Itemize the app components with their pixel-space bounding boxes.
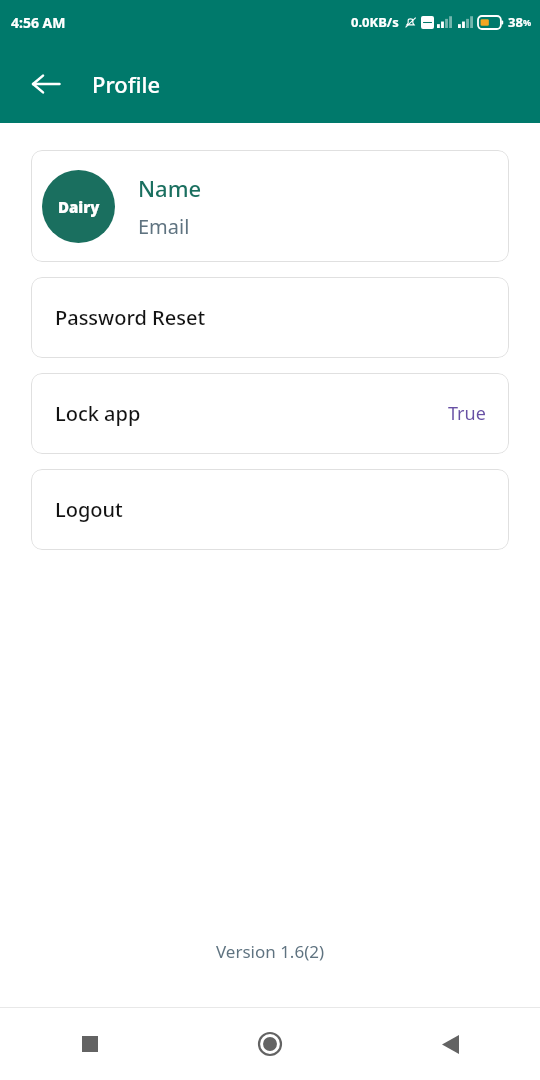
button[interactable]: Back bbox=[22, 60, 70, 108]
button[interactable]: Recents bbox=[0, 1008, 180, 1080]
button[interactable]: Password Reset bbox=[31, 277, 509, 358]
button[interactable]: Logout bbox=[31, 469, 509, 550]
staticText: Name bbox=[138, 173, 202, 203]
staticText: Version 1.6(2) bbox=[0, 940, 540, 963]
staticText: Lock app bbox=[55, 400, 141, 427]
button[interactable]: Lock app bbox=[31, 373, 509, 454]
button[interactable]: Home bbox=[180, 1008, 360, 1080]
staticText: 4:56 AM bbox=[11, 13, 66, 32]
staticText: Password Reset bbox=[55, 304, 206, 331]
button[interactable]: Dairy bbox=[31, 150, 509, 262]
staticText: 0.0KB/s bbox=[351, 13, 399, 31]
staticText: Profile bbox=[92, 69, 161, 99]
staticText: Email bbox=[138, 213, 190, 240]
staticText: 38 bbox=[508, 13, 523, 31]
button[interactable]: Back bbox=[360, 1008, 540, 1080]
staticText: True bbox=[448, 401, 486, 426]
staticText: Logout bbox=[55, 496, 123, 523]
staticText: Dairy bbox=[58, 197, 100, 217]
staticText: % bbox=[523, 16, 532, 28]
